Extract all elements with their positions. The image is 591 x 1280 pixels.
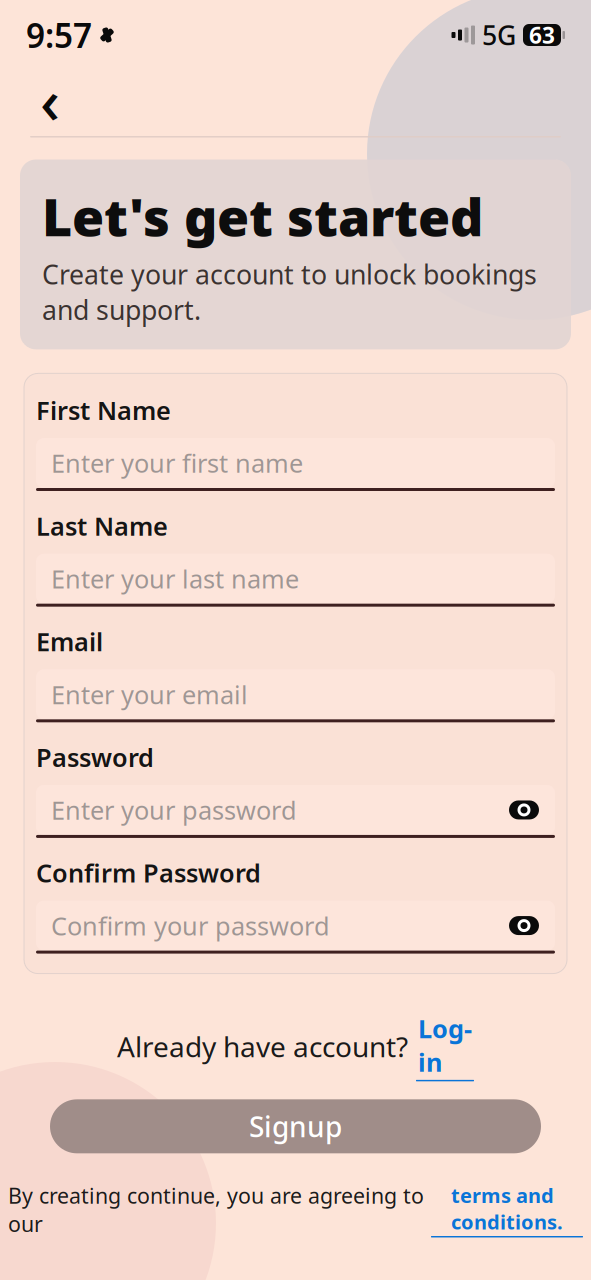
- staticText: 63: [529, 20, 555, 50]
- staticText: terms and conditions.: [451, 1182, 563, 1235]
- staticText: ‹: [40, 59, 60, 141]
- staticText: Confirm Password: [36, 856, 261, 889]
- staticText: By creating continue, you are agreeing t…: [8, 1181, 424, 1238]
- button[interactable]: Back: [30, 78, 70, 122]
- button[interactable]: Confirm your password: [36, 901, 555, 954]
- staticText: 5G: [482, 17, 516, 53]
- staticText: Enter your last name: [51, 562, 299, 595]
- button[interactable]: Enter your email: [36, 669, 555, 722]
- staticText: Password: [36, 740, 154, 774]
- staticText: 9:57: [26, 13, 92, 57]
- staticText: Let's get started: [42, 181, 483, 251]
- staticText: Email: [36, 625, 103, 658]
- staticText: Enter your first name: [51, 446, 303, 480]
- staticText: Already have account?: [117, 1028, 408, 1065]
- staticText: Enter your email: [51, 677, 248, 711]
- staticText: Create your account to unlock bookings a…: [42, 257, 537, 327]
- button[interactable]: Enter your first name: [36, 438, 555, 491]
- button[interactable]: Login: [416, 1012, 474, 1081]
- button[interactable]: Enter your password: [36, 785, 555, 838]
- button[interactable]: terms and conditions.: [431, 1182, 583, 1237]
- staticText: Signup: [249, 1108, 342, 1145]
- staticText: Enter your password: [51, 793, 297, 827]
- staticText: Confirm your password: [51, 909, 330, 942]
- staticText: Login: [418, 1012, 472, 1079]
- staticText: First Name: [36, 393, 171, 427]
- staticText: Last Name: [36, 509, 168, 543]
- button[interactable]: Signup: [50, 1099, 541, 1153]
- button[interactable]: Enter your last name: [36, 554, 555, 607]
